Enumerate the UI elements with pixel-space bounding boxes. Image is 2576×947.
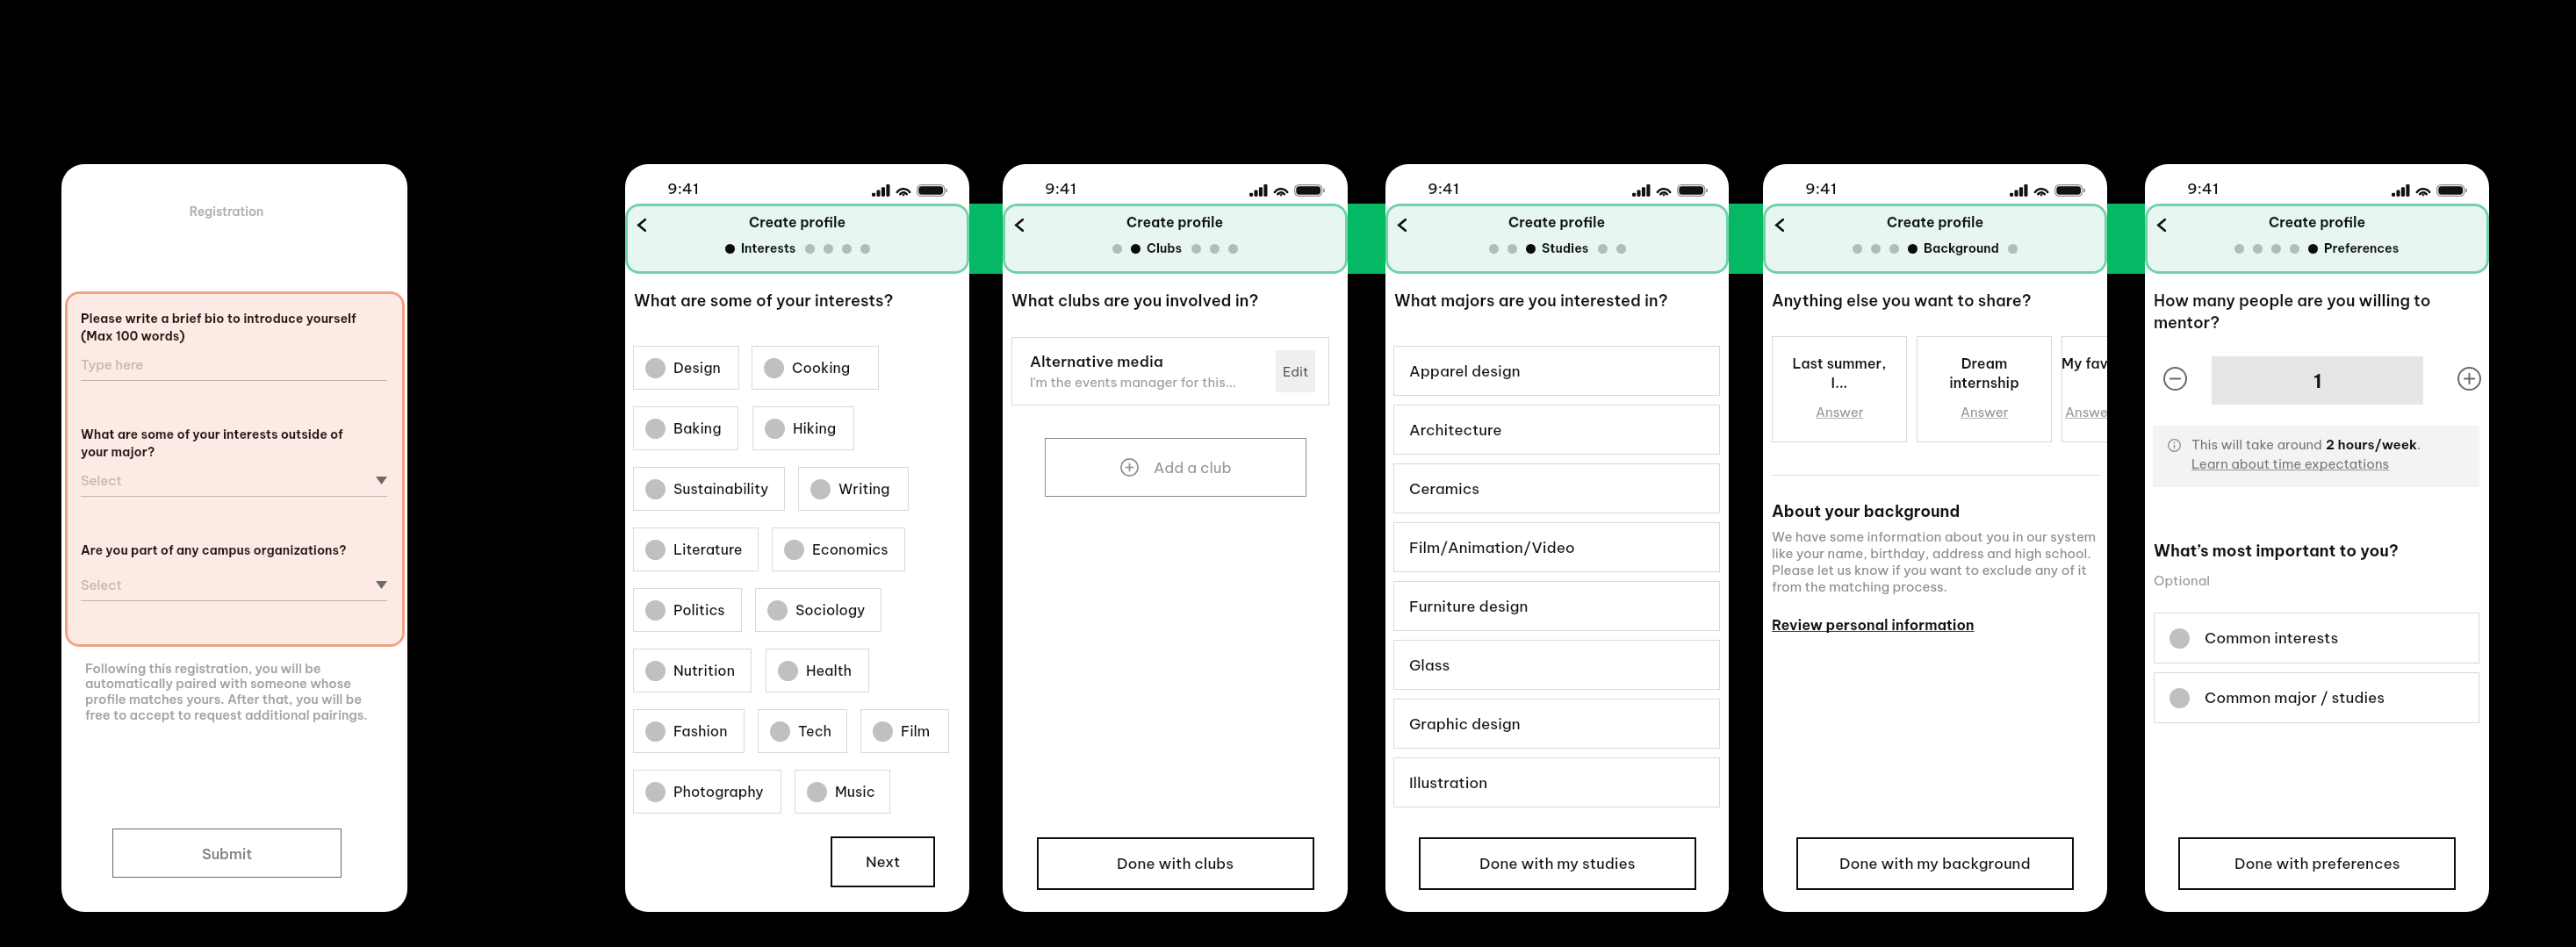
button[interactable]: Sociology (755, 588, 881, 632)
button[interactable]: Photography (633, 770, 781, 814)
staticText: Create profile (2269, 213, 2366, 231)
button[interactable]: Furniture design (1393, 581, 1720, 631)
staticText: Following this registration, you will be… (85, 660, 368, 723)
button[interactable]: Music (795, 770, 890, 814)
staticText: Clubs (1147, 240, 1183, 256)
staticText: What are some of your interests outside … (81, 427, 343, 460)
staticText: Submit (202, 844, 253, 863)
staticText: Film/Animation/Video (1409, 538, 1575, 557)
staticText: Create profile (1508, 213, 1606, 231)
staticText: Interests (741, 240, 796, 256)
button[interactable]: Ceramics (1393, 463, 1720, 513)
button[interactable]: Increase count (2457, 367, 2481, 391)
staticText: Answer (2065, 404, 2107, 420)
button[interactable]: Glass (1393, 640, 1720, 690)
staticText: Done with clubs (1117, 854, 1234, 873)
button[interactable]: Film (860, 709, 949, 753)
button[interactable]: Dream internship (1917, 336, 2052, 442)
button[interactable]: Graphic design (1393, 699, 1720, 749)
staticText: 9:41 (1045, 179, 1076, 198)
staticText: Are you part of any campus organizations… (81, 542, 347, 558)
button[interactable]: Back (2147, 209, 2177, 240)
staticText: Baking (673, 420, 722, 437)
button[interactable]: Done with clubs (1037, 837, 1314, 890)
button[interactable]: Sustainability (633, 467, 785, 511)
staticText: Sustainability (673, 480, 769, 498)
staticText: Alternative media (1030, 352, 1163, 371)
button[interactable]: Apparel design (1393, 346, 1720, 396)
staticText: Common interests (2205, 628, 2339, 648)
button[interactable]: Hiking (752, 406, 854, 450)
staticText: Answer (1961, 404, 2009, 420)
button[interactable]: Illustration (1393, 757, 1720, 807)
staticText: Answer (1816, 404, 1864, 420)
button[interactable]: Design (633, 346, 739, 390)
button[interactable]: Decrease count (2163, 367, 2187, 391)
staticText: Select (81, 577, 122, 593)
staticText: Apparel design (1409, 362, 1521, 381)
button[interactable]: Next (831, 836, 935, 887)
button[interactable]: Cooking (752, 346, 879, 390)
button[interactable]: Architecture (1393, 405, 1720, 455)
staticText: What majors are you interested in? (1394, 291, 1668, 311)
staticText: Type here (81, 356, 144, 373)
staticText: Done with my studies (1479, 854, 1636, 873)
staticText: Writing (838, 480, 890, 498)
button[interactable]: Film/Animation/Video (1393, 522, 1720, 572)
button[interactable]: Politics (633, 588, 742, 632)
staticText: My favourite spot (2062, 355, 2107, 372)
staticText: Next (866, 852, 901, 872)
staticText: Background (1924, 240, 1999, 256)
button[interactable]: Writing (798, 467, 909, 511)
button[interactable]: Tech (758, 709, 847, 753)
staticText: Hiking (793, 420, 837, 437)
staticText: Design (673, 359, 721, 377)
staticText: What’s most important to you? (2154, 541, 2399, 561)
button[interactable]: Learn about time expectations (2191, 456, 2390, 472)
button[interactable]: Add a club (1045, 438, 1306, 497)
staticText: Cooking (792, 359, 851, 377)
staticText: Done with my background (1839, 854, 2031, 873)
staticText: Please write a brief bio to introduce yo… (81, 311, 356, 344)
staticText: 2 hours/week (2326, 436, 2417, 453)
button[interactable]: Back (627, 209, 657, 240)
button[interactable]: Common interests (2154, 613, 2479, 664)
staticText: 9:41 (1428, 179, 1459, 198)
staticText: Politics (673, 601, 725, 619)
button[interactable]: Alternative media (1011, 337, 1329, 405)
staticText: Optional (2154, 572, 2211, 589)
staticText: Furniture design (1409, 597, 1529, 616)
button[interactable]: Nutrition (633, 649, 752, 692)
button[interactable]: Economics (772, 527, 905, 571)
button[interactable]: Health (766, 649, 869, 692)
staticText: Create profile (1887, 213, 1984, 231)
staticText: Photography (673, 783, 764, 800)
staticText: 9:41 (2187, 179, 2219, 198)
staticText: How many people are you willing to mento… (2154, 291, 2431, 333)
staticText: Anything else you want to share? (1772, 291, 2032, 311)
staticText: . (2417, 436, 2421, 453)
staticText: About your background (1772, 501, 1961, 521)
staticText: 9:41 (667, 179, 699, 198)
button[interactable]: Back (1387, 209, 1417, 240)
button[interactable]: Last summer, I... (1772, 336, 1907, 442)
button[interactable]: Submit (112, 829, 342, 878)
button[interactable]: Back (1765, 209, 1795, 240)
staticText: Health (806, 662, 853, 679)
button[interactable]: Fashion (633, 709, 745, 753)
button[interactable]: My favourite spot (2062, 336, 2107, 442)
button[interactable]: Done with my background (1796, 837, 2074, 890)
button[interactable]: Literature (633, 527, 759, 571)
button[interactable]: Baking (633, 406, 738, 450)
button[interactable]: Common major / studies (2154, 672, 2479, 723)
staticText: What are some of your interests? (634, 291, 894, 311)
button[interactable]: Back (1004, 209, 1034, 240)
button[interactable]: Done with preferences (2178, 837, 2456, 890)
button[interactable]: Review personal information (1772, 616, 1975, 634)
staticText: Music (835, 783, 875, 800)
button[interactable]: Done with my studies (1419, 837, 1696, 890)
button[interactable]: Edit (1276, 350, 1315, 392)
staticText: We have some information about you in ou… (1772, 528, 2097, 595)
staticText: Glass (1409, 656, 1450, 675)
staticText: Preferences (2324, 240, 2400, 256)
